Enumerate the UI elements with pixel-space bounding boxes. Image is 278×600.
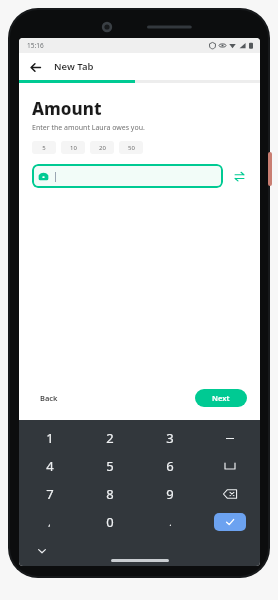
- button[interactable]: 5: [80, 452, 140, 480]
- button[interactable]: 2: [80, 424, 140, 452]
- staticText: 7: [46, 485, 54, 503]
- button[interactable]: Hide keyboard: [35, 544, 49, 558]
- button[interactable]: Minus: [200, 424, 260, 452]
- button[interactable]: 4: [19, 452, 80, 480]
- staticText: 1: [46, 429, 54, 447]
- staticText: ,: [48, 516, 51, 528]
- staticText: Enter the amount Laura owes you.: [32, 123, 145, 133]
- button[interactable]: [32, 164, 223, 188]
- button[interactable]: .: [140, 508, 200, 536]
- button[interactable]: 1: [19, 424, 80, 452]
- button[interactable]: Space: [200, 452, 260, 480]
- staticText: Back: [40, 393, 58, 403]
- staticText: 6: [166, 457, 174, 475]
- staticText: .: [169, 516, 172, 528]
- staticText: 4: [46, 457, 54, 475]
- button[interactable]: Backspace: [200, 480, 260, 508]
- button[interactable]: 50: [119, 141, 143, 154]
- staticText: 2: [106, 429, 114, 447]
- staticText: 5: [106, 457, 114, 475]
- staticText: 20: [99, 144, 106, 152]
- button[interactable]: 10: [61, 141, 85, 154]
- button[interactable]: 0: [80, 508, 140, 536]
- staticText: New Tab: [54, 60, 94, 73]
- staticText: 50: [128, 144, 135, 152]
- staticText: 3: [166, 429, 174, 447]
- staticText: 15:16: [27, 41, 44, 50]
- staticText: Next: [212, 393, 230, 403]
- button[interactable]: Back: [32, 388, 66, 408]
- button[interactable]: Back: [24, 56, 46, 78]
- button[interactable]: 7: [19, 480, 80, 508]
- button[interactable]: Next: [195, 389, 247, 407]
- staticText: 8: [106, 485, 114, 503]
- button[interactable]: 8: [80, 480, 140, 508]
- button[interactable]: 9: [140, 480, 200, 508]
- staticText: 0: [106, 513, 114, 531]
- button[interactable]: Done: [200, 508, 260, 536]
- button[interactable]: ,: [19, 508, 80, 536]
- button[interactable]: Swap currency: [231, 168, 247, 184]
- button[interactable]: 5: [32, 141, 56, 154]
- button[interactable]: 6: [140, 452, 200, 480]
- staticText: 5: [42, 144, 46, 152]
- button[interactable]: 20: [90, 141, 114, 154]
- staticText: Amount: [32, 97, 102, 120]
- staticText: 9: [166, 485, 174, 503]
- staticText: 10: [70, 144, 77, 152]
- button[interactable]: 3: [140, 424, 200, 452]
